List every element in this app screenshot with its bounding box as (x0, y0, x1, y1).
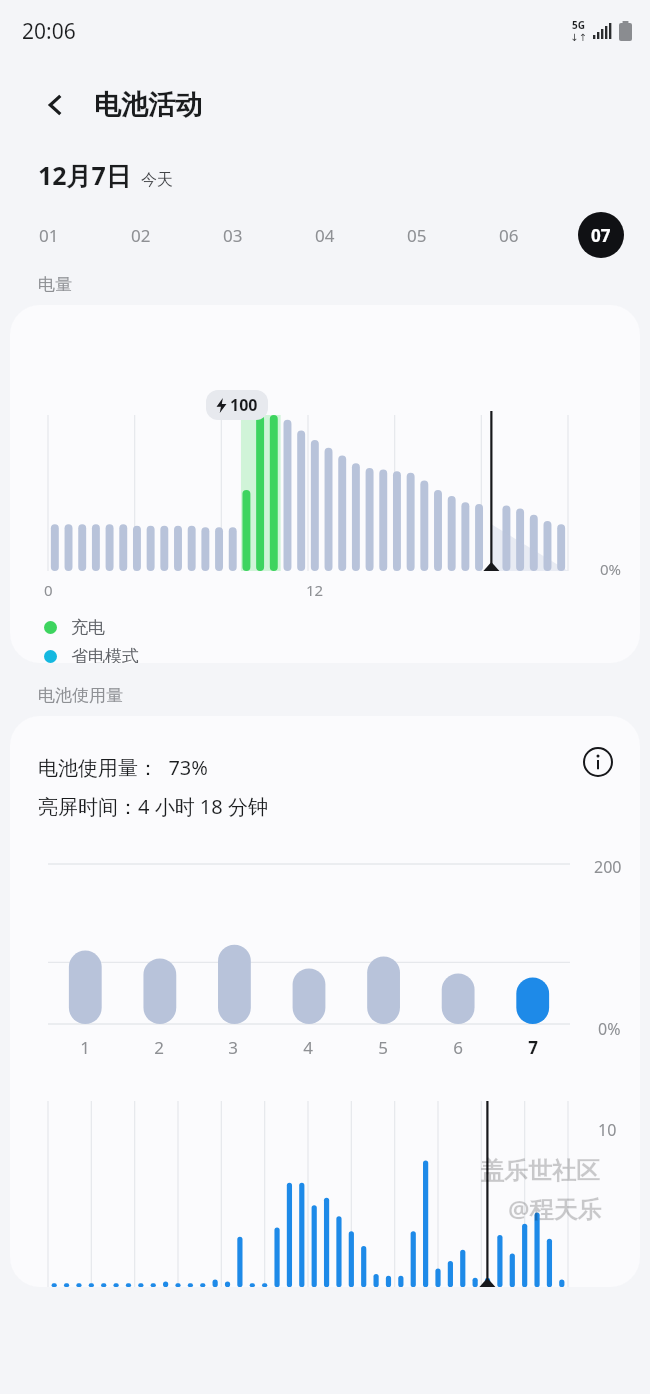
staticText: 充电 (71, 617, 105, 638)
staticText: 20:06 (22, 17, 76, 46)
staticText: 04 (315, 224, 335, 247)
button[interactable]: 02 (118, 212, 164, 258)
staticText: 0% (598, 1018, 621, 1040)
staticText: 07 (591, 224, 611, 247)
staticText: 10 (598, 1119, 617, 1141)
staticText: 今天 (141, 170, 173, 190)
staticText: 0% (600, 559, 622, 579)
staticText: 0 (44, 580, 53, 600)
button[interactable]: Back (34, 83, 78, 127)
button[interactable]: 06 (486, 212, 532, 258)
staticText: 省电模式 (71, 646, 139, 663)
staticText: 电池活动 (94, 88, 202, 122)
button[interactable]: 01 (26, 212, 72, 258)
staticText: 亮屏时间：4 小时 18 分钟 (38, 793, 268, 820)
staticText: 12月7日 (38, 158, 131, 192)
staticText: 100 (230, 394, 258, 416)
staticText: 电池使用量： 73% (38, 754, 208, 781)
staticText: 7 (528, 1036, 538, 1059)
staticText: 电池使用量 (38, 685, 123, 706)
staticText: 05 (407, 224, 427, 247)
staticText: ↓↑ (570, 32, 587, 44)
staticText: 12 (306, 580, 324, 600)
staticText: 03 (223, 224, 243, 247)
staticText: 盖乐世社区 (480, 1156, 600, 1186)
staticText: 电量 (38, 274, 72, 295)
staticText: 6 (453, 1036, 463, 1059)
button[interactable]: 03 (210, 212, 256, 258)
staticText: 02 (131, 224, 151, 247)
staticText: @程天乐 (508, 1192, 602, 1225)
staticText: 4 (303, 1036, 313, 1059)
staticText: 5G (572, 18, 585, 32)
staticText: 200 (594, 856, 622, 878)
button[interactable]: Info (574, 738, 622, 786)
staticText: 5 (378, 1036, 388, 1059)
staticText: 01 (39, 224, 59, 247)
button[interactable]: 04 (302, 212, 348, 258)
staticText: 06 (499, 224, 519, 247)
staticText: 1 (80, 1036, 90, 1059)
button[interactable]: 电池使用量： 73% (10, 716, 640, 1287)
button[interactable]: 100 (10, 305, 640, 663)
button[interactable]: 05 (394, 212, 440, 258)
staticText: 2 (154, 1036, 164, 1059)
button[interactable]: 07 (578, 212, 624, 258)
staticText: 3 (228, 1036, 238, 1059)
